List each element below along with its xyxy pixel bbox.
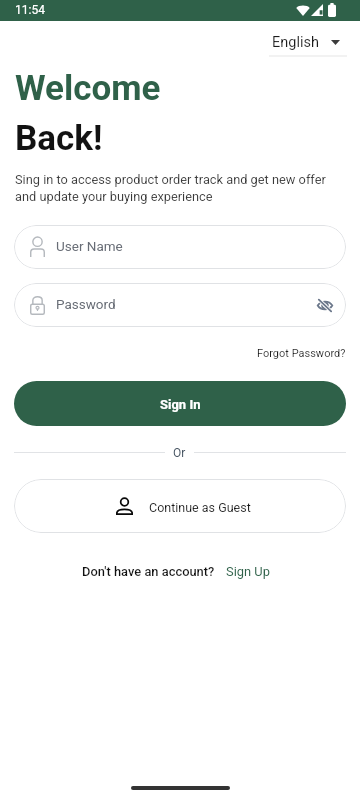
staticText: English xyxy=(272,34,319,51)
staticText: Back! xyxy=(15,118,103,159)
button[interactable]: Continue as Guest xyxy=(14,479,346,533)
staticText: Password xyxy=(56,296,116,313)
other: Show password xyxy=(317,300,333,311)
staticText: Continue as Guest xyxy=(149,499,251,515)
button[interactable]: English xyxy=(266,32,348,60)
staticText: Sign In xyxy=(160,396,201,412)
staticText: Don't have an account? xyxy=(82,563,215,580)
button[interactable]: Sign In xyxy=(14,381,346,426)
staticText: Welcome xyxy=(15,68,161,109)
staticText: Forgot Password? xyxy=(257,346,346,360)
staticText: Sing in to access product order track an… xyxy=(15,171,347,205)
staticText: 11:54 xyxy=(15,4,45,17)
button[interactable]: Sign Up xyxy=(215,563,270,580)
button[interactable]: Forgot Password? xyxy=(257,346,346,360)
staticText: User Name xyxy=(56,238,123,255)
staticText: Or xyxy=(173,444,186,460)
button[interactable]: Password xyxy=(14,283,346,327)
staticText: Sign Up xyxy=(226,563,270,580)
button[interactable]: User Name xyxy=(14,225,346,269)
